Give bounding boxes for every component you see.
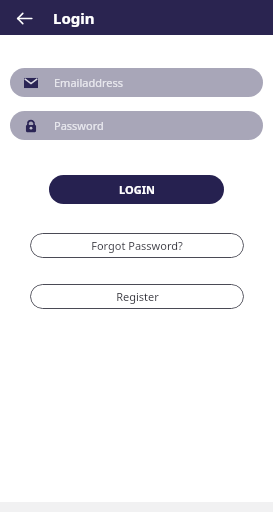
staticText: Forgot Password?: [91, 238, 183, 253]
staticText: Register: [116, 289, 159, 304]
button[interactable]: Emailaddress: [10, 68, 263, 97]
button[interactable]: Register: [30, 284, 244, 309]
button[interactable]: LOGIN: [49, 175, 224, 204]
button[interactable]: Password: [10, 111, 263, 140]
button[interactable]: Back: [12, 6, 36, 30]
staticText: LOGIN: [119, 182, 155, 197]
button[interactable]: Forgot Password?: [30, 233, 244, 258]
staticText: Password: [54, 118, 104, 133]
staticText: Emailaddress: [54, 75, 124, 90]
staticText: Login: [53, 8, 95, 28]
